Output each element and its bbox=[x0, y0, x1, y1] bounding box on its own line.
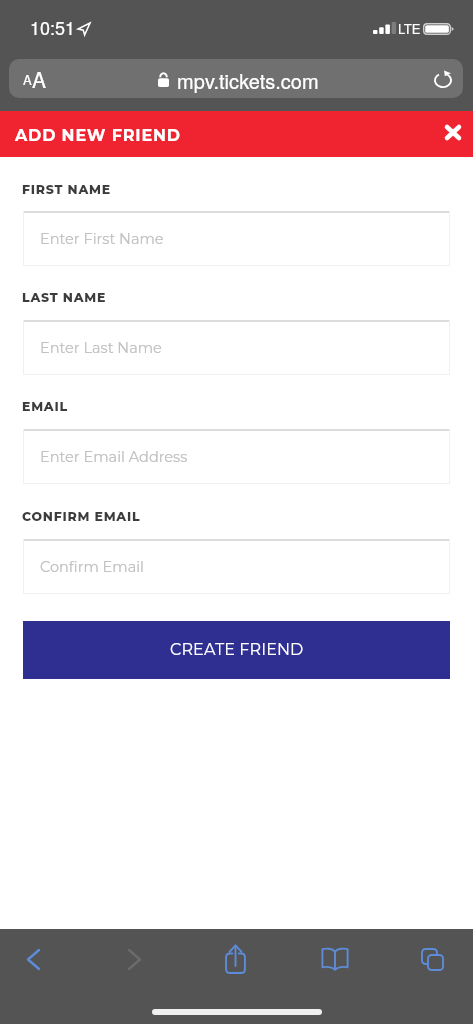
staticText: FIRST NAME bbox=[22, 182, 111, 197]
button[interactable]: Back bbox=[11, 941, 55, 977]
staticText: EMAIL bbox=[22, 399, 68, 414]
button[interactable]: CREATE FRIEND bbox=[23, 621, 450, 679]
button[interactable]: Tabs bbox=[410, 941, 454, 977]
staticText: Confirm Email bbox=[40, 558, 145, 576]
staticText: Enter Email Address bbox=[40, 448, 188, 466]
staticText: LAST NAME bbox=[22, 290, 107, 305]
staticText: A bbox=[32, 64, 47, 94]
staticText: Enter First Name bbox=[40, 230, 164, 248]
staticText: 10:51 bbox=[30, 14, 76, 40]
button[interactable]: Bookmarks bbox=[313, 941, 357, 977]
staticText: mpv.tickets.com bbox=[177, 66, 319, 95]
staticText: A bbox=[23, 70, 32, 89]
staticText: CREATE FRIEND bbox=[170, 640, 304, 660]
button[interactable]: Forward bbox=[112, 941, 156, 977]
button[interactable]: Share bbox=[213, 941, 257, 977]
button[interactable]: Text size bbox=[9, 59, 463, 98]
staticText: CONFIRM EMAIL bbox=[22, 509, 141, 524]
button[interactable]: Close bbox=[434, 111, 468, 157]
staticText: ADD NEW FRIEND bbox=[15, 126, 181, 146]
button[interactable]: Text size bbox=[17, 59, 62, 98]
staticText: LTE bbox=[398, 19, 421, 38]
button[interactable]: Reload bbox=[410, 59, 455, 98]
staticText: Enter Last Name bbox=[40, 339, 162, 357]
